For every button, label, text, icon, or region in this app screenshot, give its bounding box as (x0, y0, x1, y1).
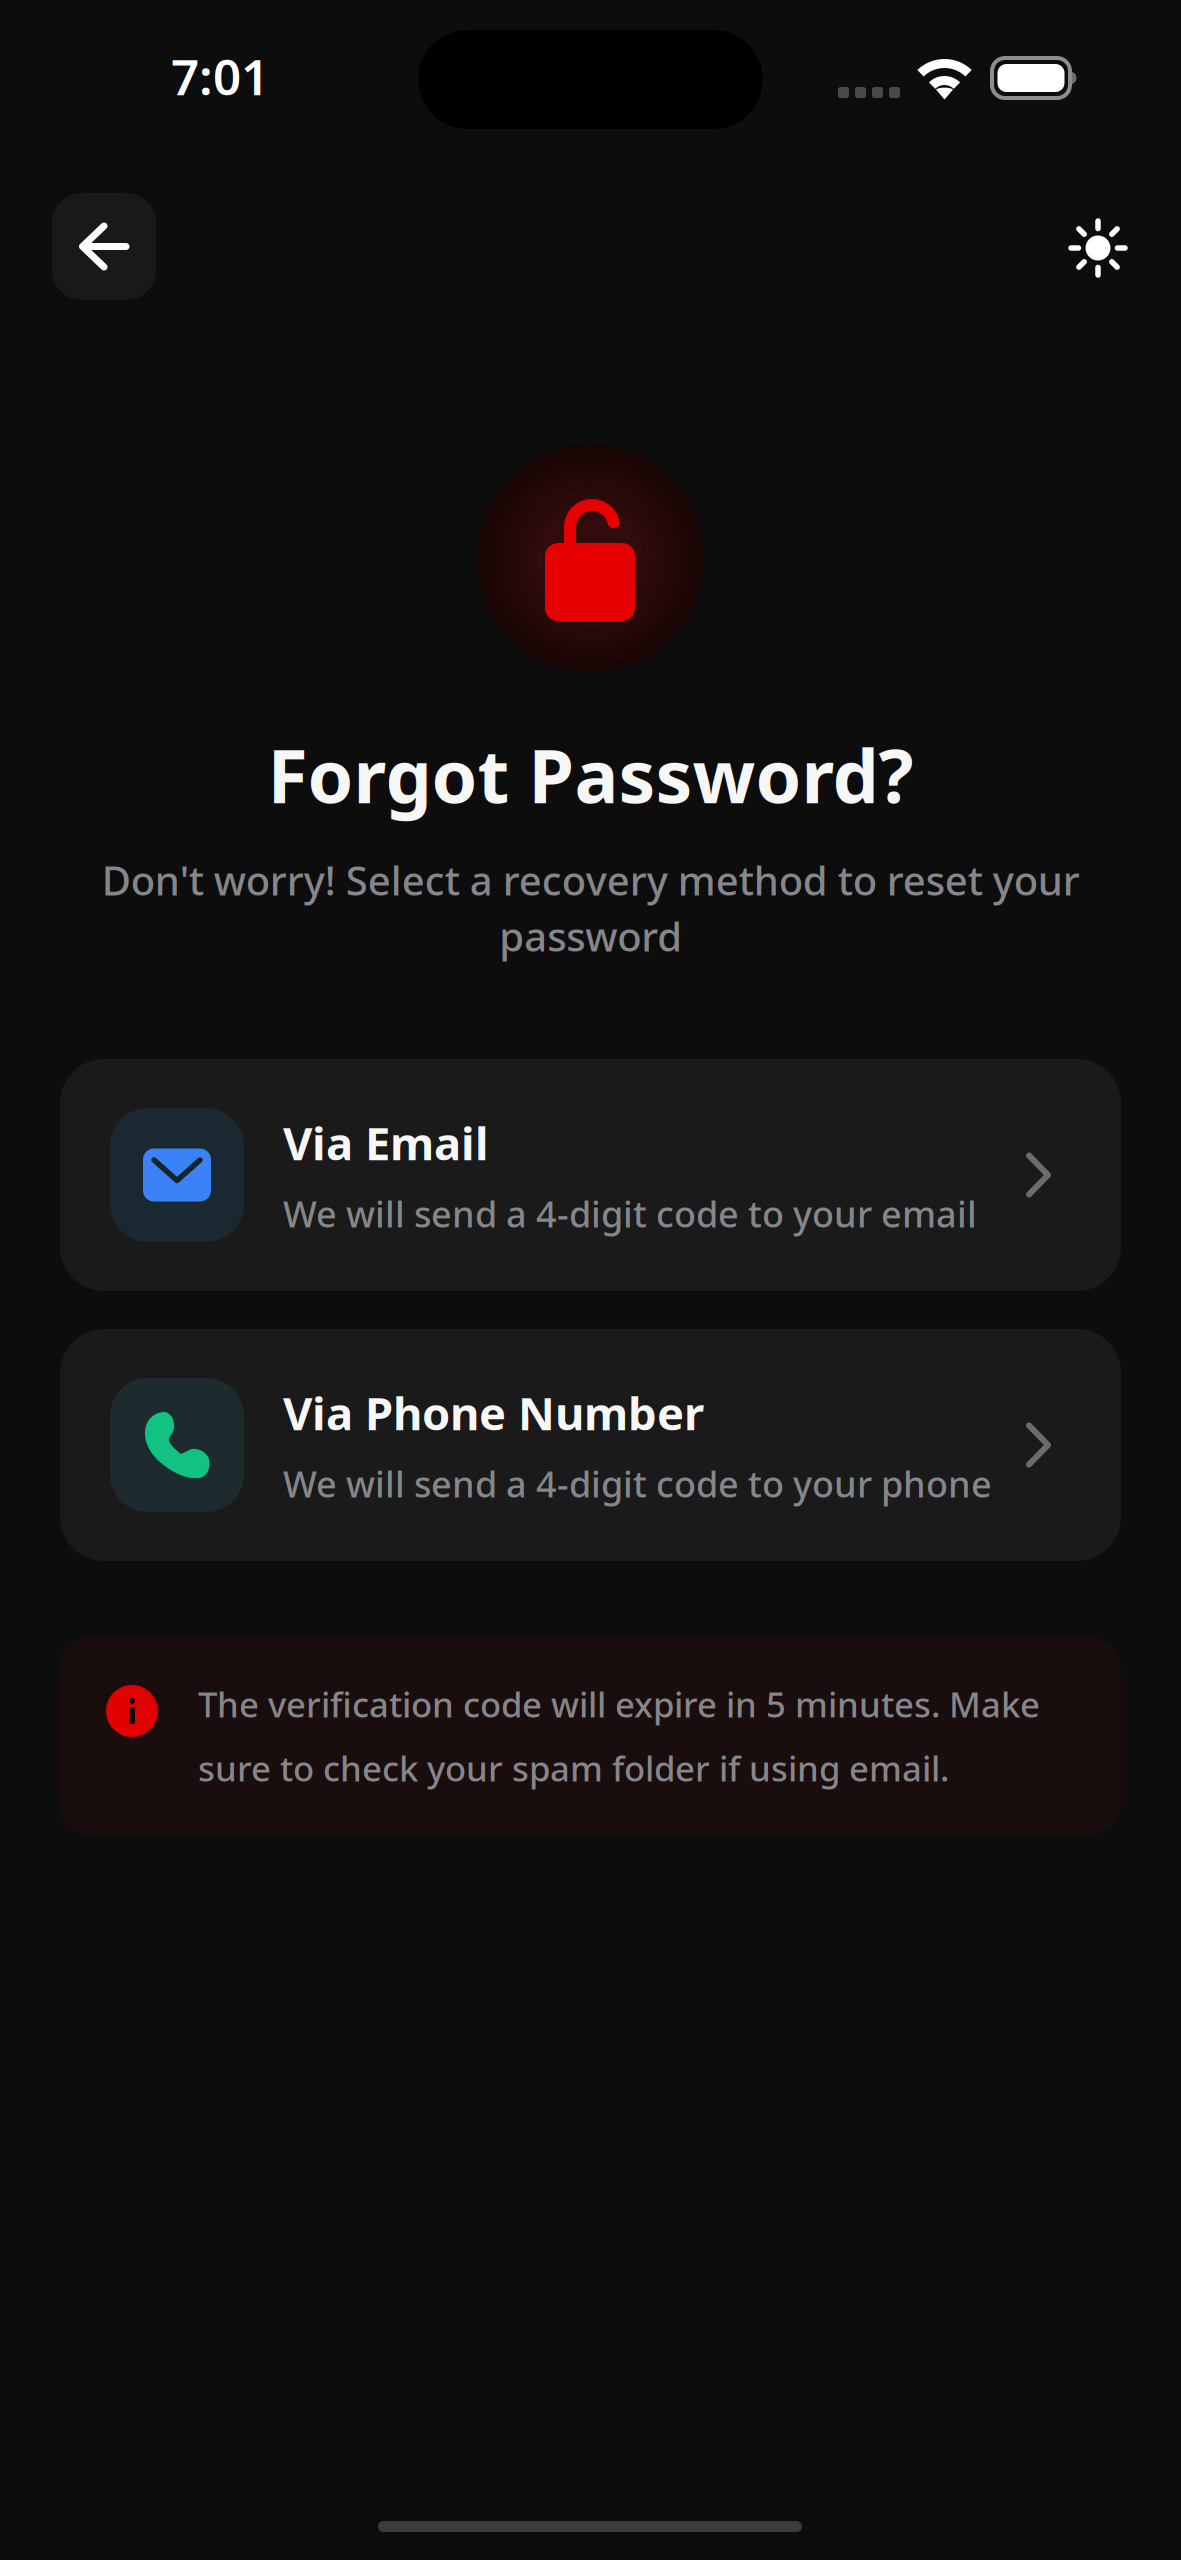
button[interactable]: Via Phone Number (60, 1329, 1121, 1561)
staticText: The verification code will expire in 5 m… (198, 1681, 1040, 1791)
staticText: Don't worry! Select a recovery method to… (101, 853, 1079, 963)
button[interactable]: Back (52, 193, 156, 300)
button[interactable]: Via Email (60, 1059, 1121, 1291)
staticText: Via Phone Number (283, 1382, 704, 1443)
staticText: We will send a 4-digit code to your phon… (283, 1460, 992, 1507)
button[interactable]: Toggle theme (1058, 208, 1138, 288)
staticText: 7:01 (171, 43, 269, 109)
staticText: Forgot Password? (267, 726, 913, 823)
staticText: Via Email (283, 1112, 489, 1173)
staticText: We will send a 4-digit code to your emai… (283, 1190, 977, 1237)
